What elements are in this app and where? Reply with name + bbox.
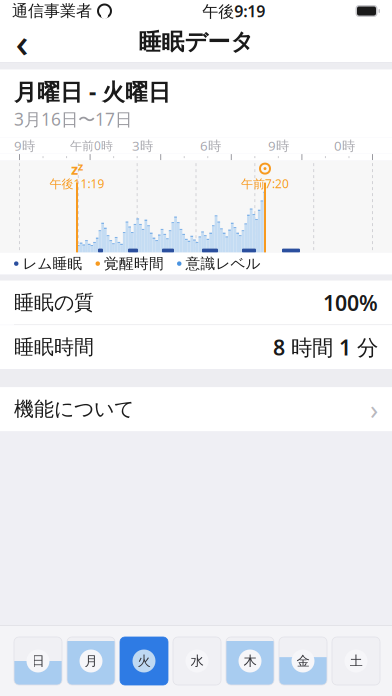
button[interactable]: 木 bbox=[226, 637, 274, 685]
staticText: 睡眠時間 bbox=[14, 335, 94, 359]
staticText: 月 bbox=[84, 653, 97, 669]
staticText: z bbox=[78, 159, 83, 174]
staticText: 午前0時 bbox=[70, 138, 113, 154]
staticText: 100% bbox=[323, 288, 378, 317]
staticText: 睡眠データ bbox=[138, 28, 253, 56]
staticText: › bbox=[370, 391, 378, 427]
staticText: z bbox=[71, 159, 78, 179]
staticText: 9時 bbox=[14, 137, 35, 154]
button[interactable]: 金 bbox=[279, 637, 327, 685]
staticText: レム睡眠 bbox=[22, 255, 82, 273]
staticText: 3月16日〜17日 bbox=[14, 108, 132, 131]
staticText: 午後11:19 bbox=[49, 176, 104, 191]
button[interactable]: 月 bbox=[67, 637, 115, 685]
staticText: 土 bbox=[349, 653, 362, 669]
staticText: 午後9:19 bbox=[202, 0, 265, 22]
staticText: 通信事業者 bbox=[12, 1, 92, 21]
staticText: ‹ bbox=[15, 15, 28, 68]
button[interactable]: 火 bbox=[120, 637, 168, 685]
staticText: 月曜日 - 火曜日 bbox=[14, 76, 171, 107]
staticText: 意識レベル bbox=[185, 255, 260, 273]
staticText: 9時 bbox=[268, 137, 289, 154]
staticText: 金 bbox=[296, 653, 309, 669]
staticText: 睡眠の質 bbox=[14, 290, 94, 315]
button[interactable]: 土 bbox=[332, 637, 380, 685]
staticText: 0時 bbox=[334, 137, 355, 154]
staticText: 覚醒時間 bbox=[104, 255, 164, 273]
staticText: 木 bbox=[243, 653, 256, 669]
staticText: 日 bbox=[31, 653, 44, 669]
staticText: 機能について bbox=[14, 397, 134, 421]
button[interactable]: 戻る bbox=[0, 22, 44, 62]
staticText: 火 bbox=[137, 653, 150, 669]
staticText: 3時 bbox=[132, 137, 153, 154]
button[interactable]: 日 bbox=[14, 637, 62, 685]
staticText: 午前7:20 bbox=[241, 176, 289, 191]
staticText: 8 時間 1 分 bbox=[273, 333, 378, 361]
staticText: 水 bbox=[190, 653, 203, 669]
button[interactable]: 水 bbox=[173, 637, 221, 685]
button[interactable]: 機能について bbox=[0, 387, 392, 431]
staticText: 6時 bbox=[200, 137, 221, 154]
